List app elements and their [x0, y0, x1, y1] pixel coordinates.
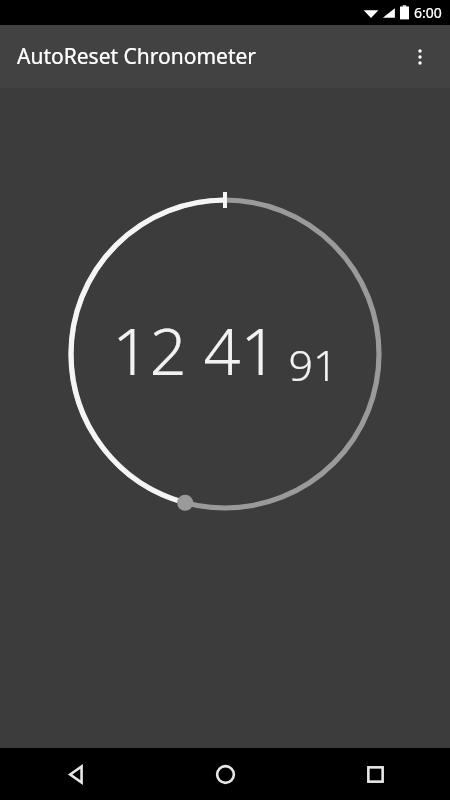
button[interactable]: Back	[0, 748, 150, 800]
button[interactable]: More options	[398, 35, 442, 79]
staticText: 6:00	[414, 3, 442, 22]
button[interactable]: Home	[150, 748, 300, 800]
staticText: 91	[288, 335, 338, 394]
staticText: 12 41	[112, 306, 278, 395]
button[interactable]: Chronometer dial	[0, 88, 450, 748]
button[interactable]: Recent apps	[300, 748, 450, 800]
staticText: AutoReset Chronometer	[17, 42, 256, 71]
